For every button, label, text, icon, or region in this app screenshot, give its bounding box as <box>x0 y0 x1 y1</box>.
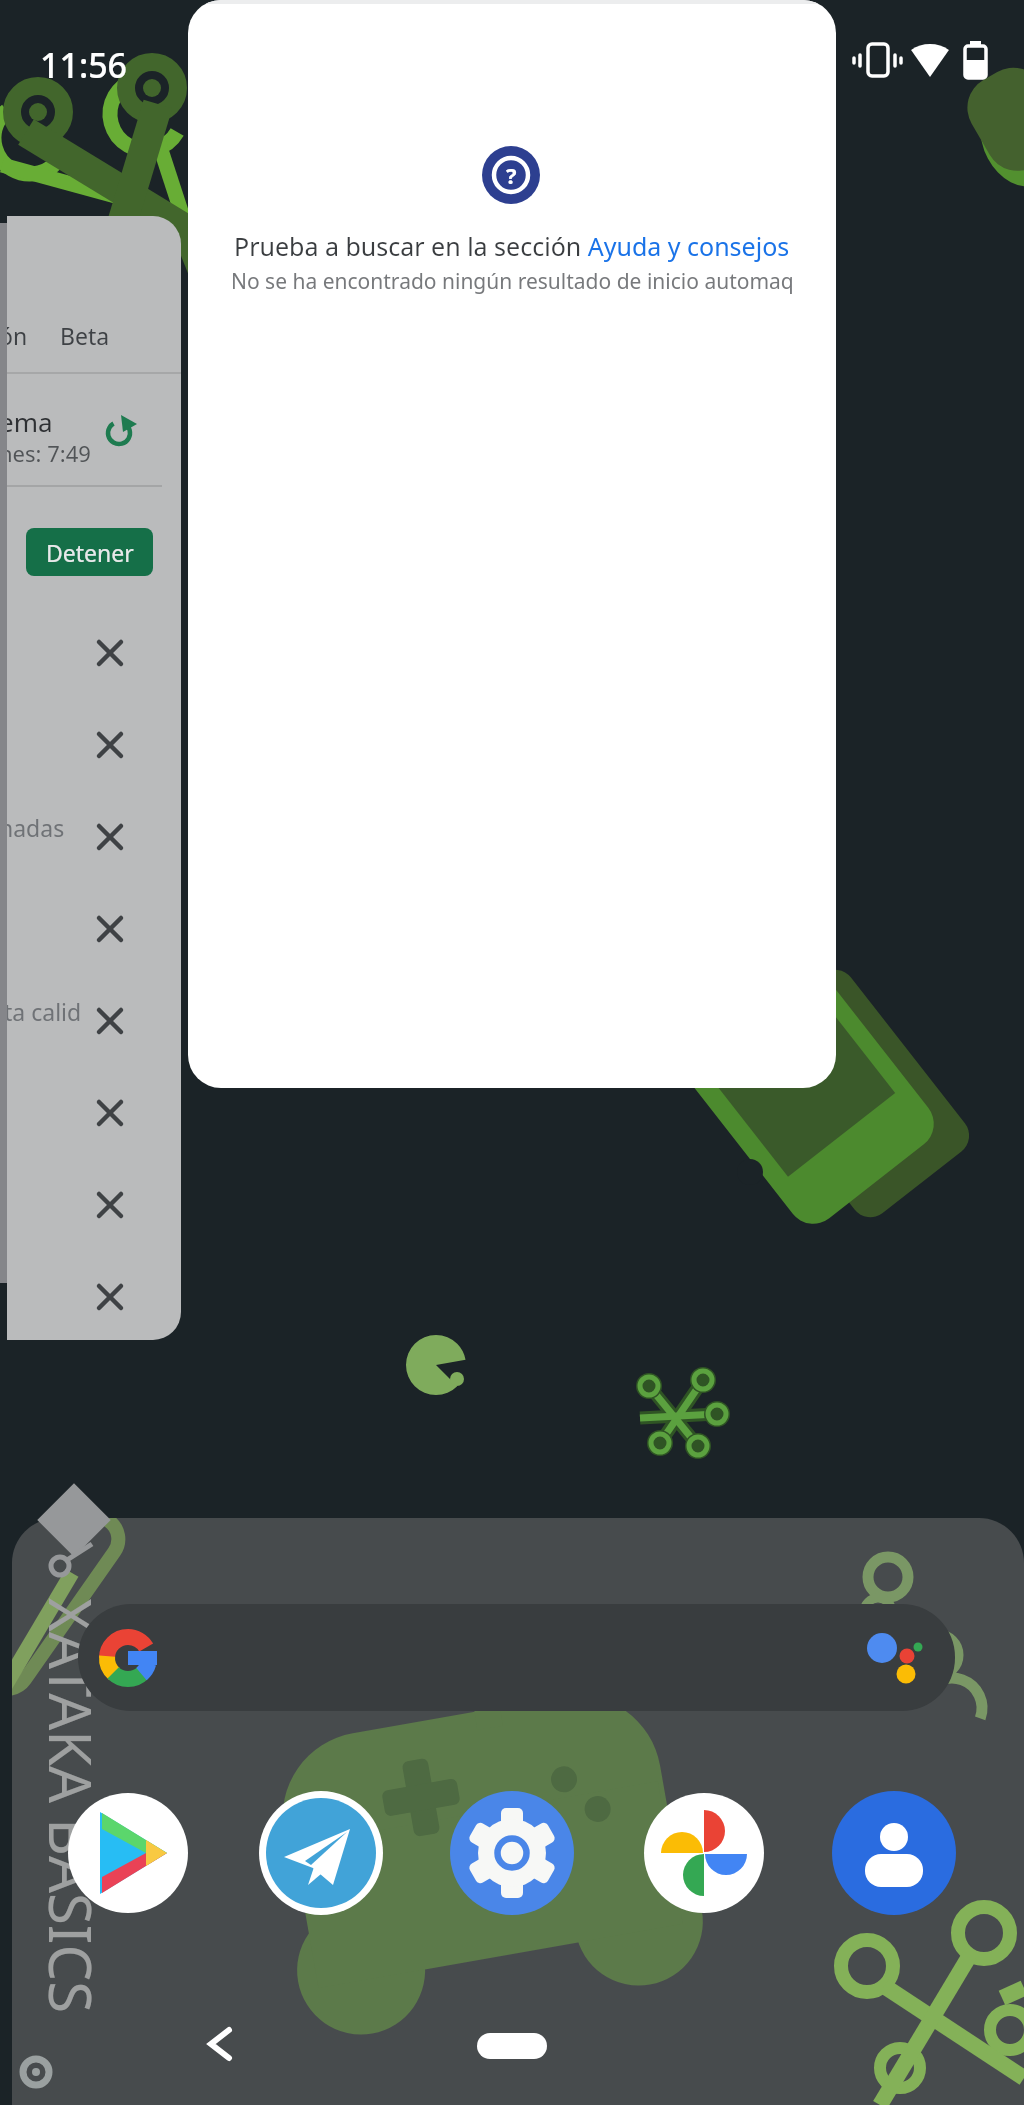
button[interactable] <box>450 1791 574 1915</box>
staticText: XATAKA BASICS <box>31 1595 110 2015</box>
button[interactable]: ? <box>482 146 540 204</box>
button[interactable] <box>477 2033 547 2059</box>
staticText: ón <box>7 320 28 351</box>
button[interactable] <box>78 1604 955 1711</box>
staticText: ta calid <box>7 996 82 1027</box>
staticText: 11:56 <box>40 42 128 88</box>
button[interactable] <box>66 1791 190 1915</box>
button[interactable] <box>832 1791 956 1915</box>
button[interactable] <box>642 1791 766 1915</box>
button[interactable] <box>196 2016 244 2072</box>
button[interactable] <box>259 1791 383 1915</box>
staticText: ema <box>7 404 53 439</box>
button[interactable]: Detener <box>26 528 153 576</box>
staticText: nadas <box>7 812 65 843</box>
staticText: ? <box>506 160 517 190</box>
staticText: Beta <box>60 320 110 351</box>
staticText: Detener <box>46 537 134 568</box>
staticText: Prueba a buscar en la sección Ayuda y co… <box>234 229 790 263</box>
staticText: nes: 7:49 <box>7 438 91 468</box>
staticText: No se ha encontrado ningún resultado de … <box>231 267 794 296</box>
